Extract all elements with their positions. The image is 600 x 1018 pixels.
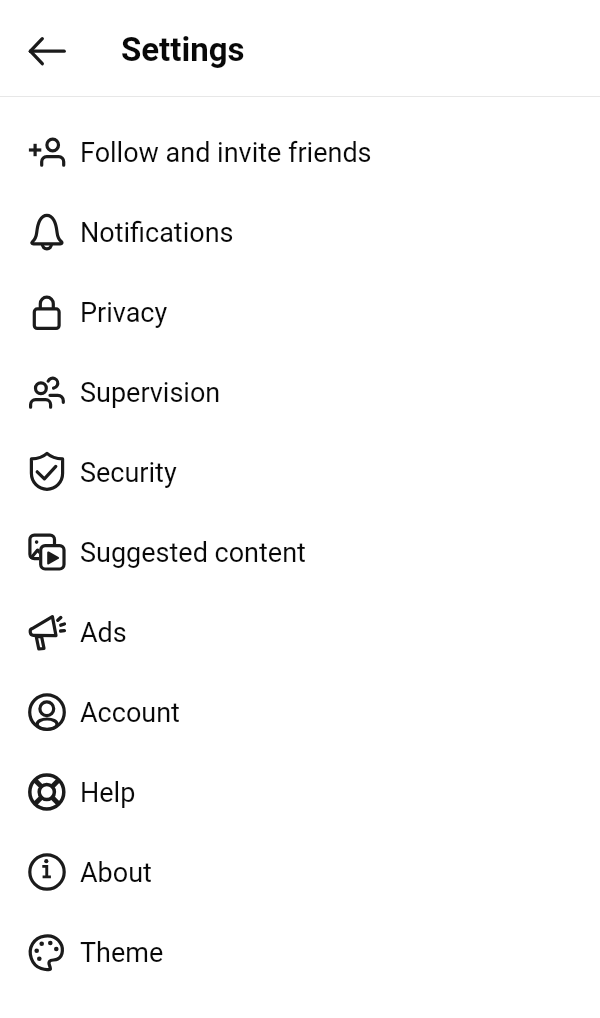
staticText: Supervision (80, 377, 221, 409)
button[interactable]: Security (0, 432, 600, 512)
button[interactable]: Account (0, 672, 600, 752)
button[interactable]: Help (0, 752, 600, 832)
staticText: Ads (80, 617, 127, 649)
staticText: Notifications (80, 217, 234, 249)
staticText: Suggested content (80, 537, 306, 569)
staticText: Settings (121, 30, 245, 69)
staticText: Security (80, 457, 177, 489)
staticText: Follow and invite friends (80, 137, 372, 169)
button[interactable]: Ads (0, 592, 600, 672)
button[interactable]: Back (0, 0, 94, 96)
staticText: Account (80, 697, 180, 729)
button[interactable]: Privacy (0, 272, 600, 352)
staticText: Theme (80, 937, 164, 969)
button[interactable]: Suggested content (0, 512, 600, 592)
button[interactable]: Notifications (0, 192, 600, 272)
button[interactable]: Supervision (0, 352, 600, 432)
staticText: Help (80, 777, 136, 809)
staticText: About (80, 857, 152, 889)
staticText: Privacy (80, 297, 168, 329)
button[interactable]: Theme (0, 912, 600, 992)
button[interactable]: Follow and invite friends (0, 112, 600, 192)
button[interactable]: About (0, 832, 600, 912)
